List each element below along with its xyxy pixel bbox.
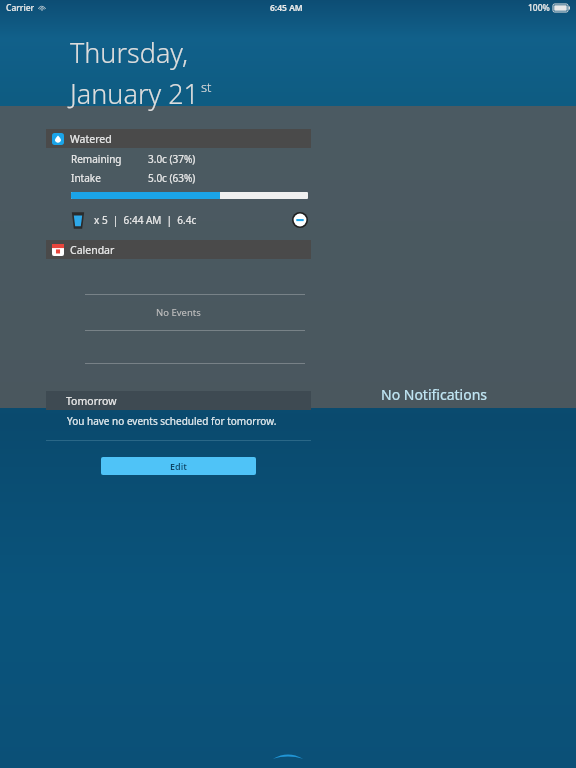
staticText: Remaining: [71, 152, 122, 166]
staticText: You have no events scheduled for tomorro…: [67, 414, 277, 428]
button[interactable]: Calendar: [46, 240, 311, 259]
staticText: Watered: [70, 132, 112, 146]
staticText: No Events: [156, 306, 201, 319]
staticText: January 21: [70, 75, 200, 112]
button[interactable]: Watered: [46, 129, 311, 148]
staticText: 6:45 AM: [270, 2, 303, 14]
button[interactable]: Remove cup: [292, 212, 308, 228]
staticText: Thursday,: [70, 34, 189, 71]
staticText: Intake: [71, 171, 101, 185]
staticText: No Notifications: [381, 385, 488, 404]
staticText: 5.0c (63%): [148, 171, 196, 185]
staticText: st: [201, 78, 212, 96]
button[interactable]: Tomorrow: [46, 391, 311, 410]
staticText: x 5 | 6:44 AM | 6.4c: [94, 213, 197, 227]
button[interactable]: Edit: [101, 457, 256, 475]
staticText: Edit: [170, 460, 187, 472]
staticText: Carrier: [6, 2, 35, 14]
staticText: 100%: [528, 2, 550, 14]
button[interactable]: Close notification center: [273, 752, 303, 760]
staticText: Tomorrow: [66, 394, 117, 408]
staticText: 3.0c (37%): [148, 152, 196, 166]
staticText: Calendar: [70, 243, 115, 257]
